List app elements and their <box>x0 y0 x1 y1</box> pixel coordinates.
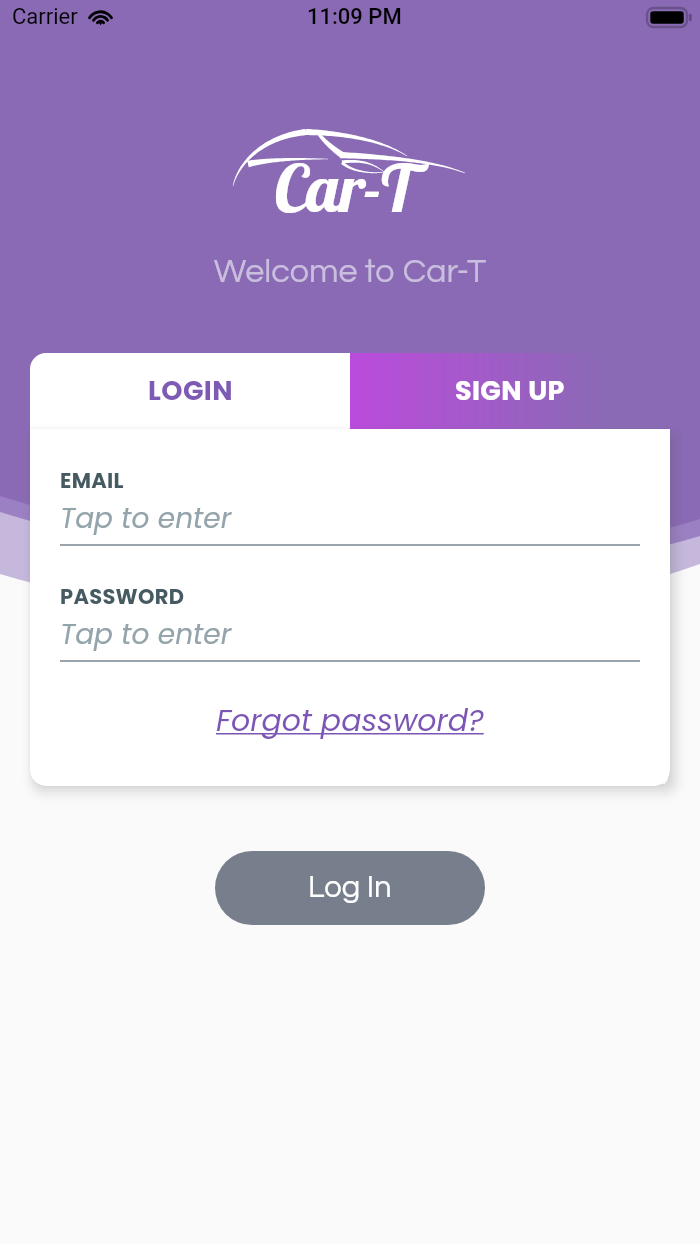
button[interactable]: Tap to enter <box>60 615 640 662</box>
button[interactable]: Log In <box>215 851 485 925</box>
button[interactable]: Forgot password? <box>216 700 484 742</box>
staticText: PASSWORD <box>60 582 185 611</box>
staticText: 11:09 PM <box>307 4 402 30</box>
staticText: SIGN UP <box>455 372 565 410</box>
button[interactable]: SIGN UP <box>350 353 670 429</box>
staticText: Carrier <box>12 4 78 30</box>
button[interactable]: Tap to enter <box>60 499 640 546</box>
other: Wi-Fi <box>87 8 114 25</box>
staticText: Log In <box>308 872 392 904</box>
staticText: LOGIN <box>148 372 233 410</box>
button[interactable]: LOGIN <box>30 353 350 429</box>
staticText: Welcome to Car-T <box>0 254 700 289</box>
staticText: Tap to enter <box>60 499 232 538</box>
staticText: Tap to enter <box>60 615 232 654</box>
staticText: EMAIL <box>60 466 124 495</box>
staticText: Car-T <box>273 146 422 229</box>
